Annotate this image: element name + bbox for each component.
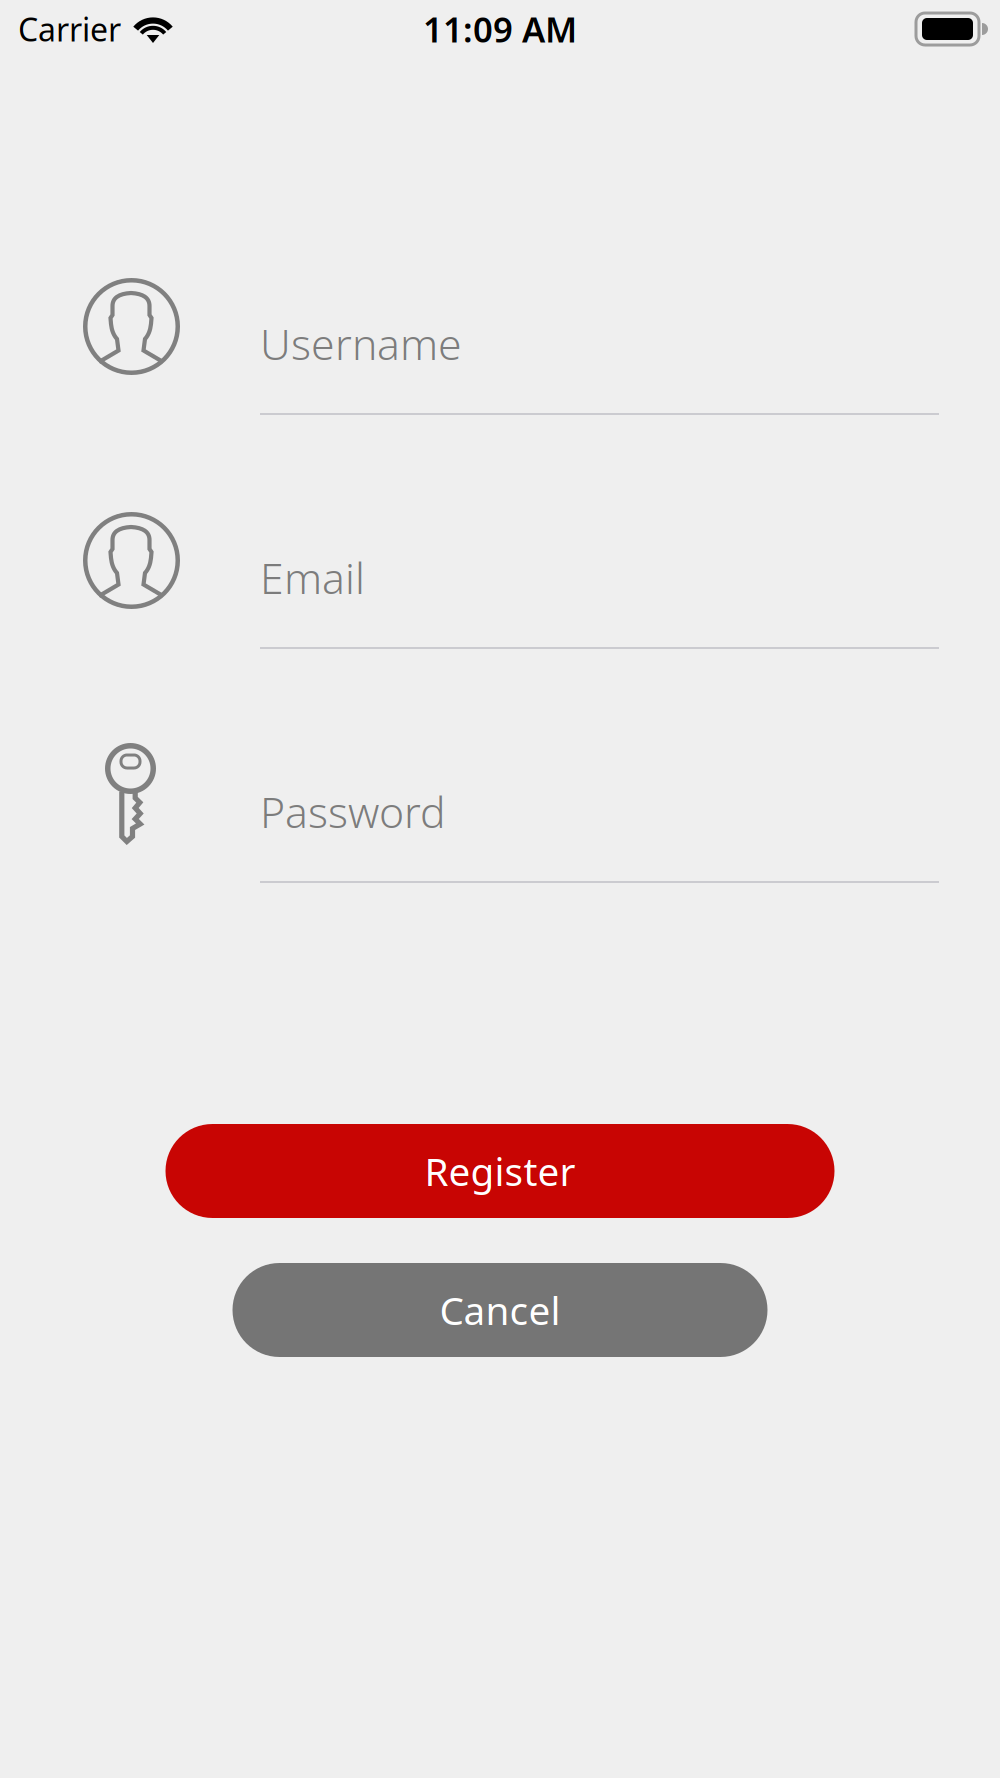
- staticText: Username: [260, 315, 462, 372]
- staticText: Password: [260, 783, 446, 840]
- button[interactable]: Email: [0, 509, 1000, 649]
- staticText: Carrier: [18, 8, 121, 50]
- button[interactable]: Cancel: [232, 1263, 767, 1357]
- staticText: Cancel: [439, 1284, 560, 1336]
- staticText: 11:09 AM: [423, 6, 577, 52]
- button[interactable]: Username: [0, 275, 1000, 415]
- staticText: Email: [260, 549, 365, 606]
- button[interactable]: Register: [165, 1124, 834, 1218]
- button[interactable]: Password: [0, 743, 1000, 883]
- staticText: Register: [424, 1145, 575, 1197]
